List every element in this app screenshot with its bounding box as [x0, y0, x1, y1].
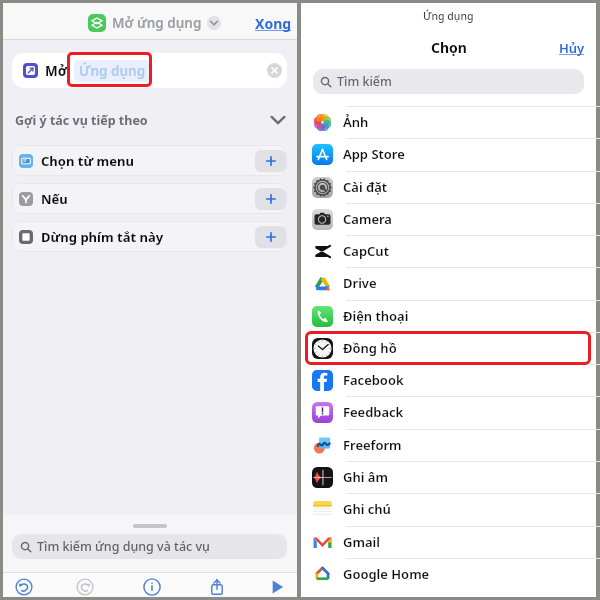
staticText: Ứng dụng	[423, 9, 474, 23]
staticText: Đồng hồ	[343, 339, 397, 357]
button[interactable]: Add Dừng phím tắt này	[255, 226, 286, 248]
button[interactable]: Facebook	[301, 364, 596, 396]
button[interactable]: CapCut	[301, 235, 596, 267]
staticText: Chọn từ menu	[41, 152, 134, 170]
staticText: Ứng dụng	[79, 62, 146, 80]
button[interactable]: Tìm kiếm ứng dụng và tác vụ	[12, 534, 287, 559]
button[interactable]: Dừng phím tắt này	[12, 221, 287, 252]
staticText: Tìm kiếm	[337, 73, 392, 90]
staticText: Camera	[343, 210, 392, 228]
staticText: Gợi ý tác vụ tiếp theo	[15, 112, 148, 129]
button[interactable]: Gmail	[301, 526, 596, 558]
staticText: Cài đặt	[343, 178, 388, 196]
button[interactable]: Cài đặt	[301, 171, 596, 203]
button[interactable]: Điện thoại	[301, 300, 596, 332]
button[interactable]: Info	[139, 574, 165, 600]
staticText: Ghi chú	[343, 500, 391, 518]
staticText: Điện thoại	[343, 307, 409, 325]
button[interactable]: Redo	[72, 574, 98, 600]
button[interactable]: Ghi chú	[301, 493, 596, 525]
staticText: Tìm kiếm ứng dụng và tác vụ	[37, 538, 210, 555]
staticText: CapCut	[343, 242, 389, 260]
button[interactable]: Mở	[12, 53, 287, 88]
staticText: App Store	[343, 145, 405, 163]
button[interactable]: Run	[264, 574, 290, 600]
button[interactable]: Drive	[301, 267, 596, 299]
staticText: Nếu	[41, 190, 68, 208]
staticText: Ảnh	[343, 113, 369, 131]
button[interactable]: Nếu	[12, 183, 287, 214]
staticText: Chọn	[431, 38, 467, 57]
button[interactable]: Tìm kiếm	[313, 69, 584, 94]
staticText: Drive	[343, 274, 377, 292]
staticText: Mở ứng dụng	[112, 14, 202, 32]
staticText: Gmail	[343, 533, 380, 551]
staticText: Google Home	[343, 565, 430, 583]
button[interactable]: Freeform	[301, 429, 596, 461]
staticText: Hủy	[559, 39, 585, 57]
button[interactable]: Clear	[267, 63, 282, 78]
staticText: Dừng phím tắt này	[41, 228, 164, 246]
staticText: Freeform	[343, 436, 402, 454]
button[interactable]: Add Chọn từ menu	[255, 150, 286, 172]
button[interactable]: Share	[204, 574, 230, 600]
staticText: Feedback	[343, 403, 404, 421]
button[interactable]: Ảnh	[301, 106, 596, 138]
button[interactable]: Google Home	[301, 558, 596, 590]
staticText: Xong	[255, 14, 292, 33]
button[interactable]: Ghi âm	[301, 461, 596, 493]
button[interactable]: Add Nếu	[255, 188, 286, 210]
staticText: Mở	[45, 62, 67, 80]
button[interactable]: Undo	[11, 574, 37, 600]
button[interactable]: Hủy	[559, 39, 585, 57]
button[interactable]: Đồng hồ	[301, 332, 596, 364]
button[interactable]: Camera	[301, 203, 596, 235]
button[interactable]: Feedback	[301, 396, 596, 428]
staticText: Ghi âm	[343, 468, 388, 486]
button[interactable]: Chọn từ menu	[12, 145, 287, 176]
staticText: Facebook	[343, 371, 404, 389]
button[interactable]: Xong	[255, 5, 292, 41]
button[interactable]: App Store	[301, 138, 596, 170]
